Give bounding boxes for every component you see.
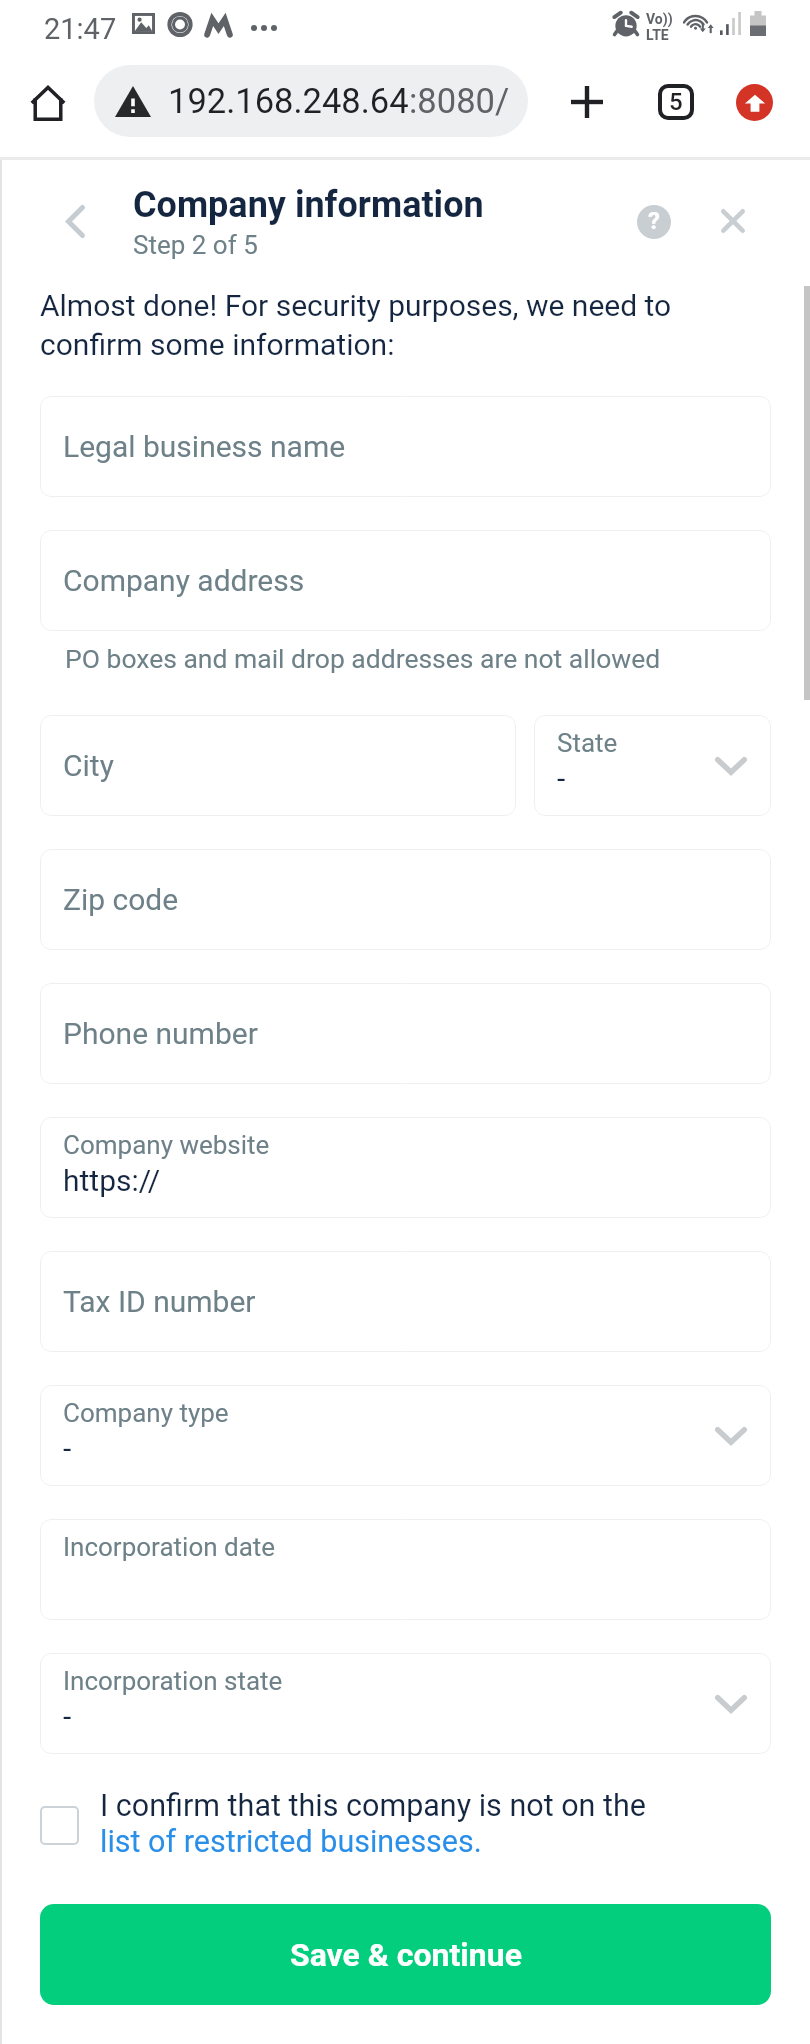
button[interactable]: Tax ID number [40,1251,771,1352]
button[interactable]: Incorporation date [40,1519,771,1620]
staticText: Legal business name [63,429,346,464]
button[interactable]: Company type [40,1385,771,1486]
staticText: PO boxes and mail drop addresses are not… [65,643,661,674]
button[interactable]: Update available [722,70,786,134]
staticText: Company type [63,1398,229,1428]
button[interactable]: Close [706,194,760,248]
button[interactable]: Legal business name [40,396,771,497]
staticText: Company website [63,1130,270,1160]
button[interactable]: New tab [555,70,619,134]
staticText: City [63,748,114,783]
staticText: - [63,1699,72,1734]
staticText: I confirm that this company is not on th… [100,1788,646,1824]
button[interactable]: Tabs [644,70,708,134]
button[interactable]: State [534,715,771,816]
staticText: 21:47 [44,12,117,46]
staticText: Company information [133,184,484,226]
staticText: Almost done! For security purposes, we n… [40,288,700,362]
staticText: Tax ID number [63,1284,256,1319]
staticText: Save & continue [290,1936,522,1974]
button[interactable]: 192.168.248.64 [94,65,528,137]
button[interactable]: list of restricted businesses. [100,1824,482,1860]
staticText: Company address [63,563,305,598]
staticText: Incorporation date [63,1532,276,1562]
button[interactable]: Home [16,71,80,135]
button[interactable]: Help [627,195,681,249]
staticText: - [557,761,566,796]
button[interactable]: Confirm checkbox [40,1806,79,1845]
button[interactable]: Zip code [40,849,771,950]
staticText: Incorporation state [63,1666,283,1696]
staticText: 192.168.248.64 [168,81,409,121]
staticText: - [63,1431,72,1466]
button[interactable]: Save & continue [40,1904,771,2005]
staticText: Zip code [63,882,179,917]
button[interactable]: Back [40,190,110,252]
staticText: https:// [63,1163,161,1198]
staticText: ? [648,207,660,235]
staticText: 5 [669,88,683,116]
button[interactable]: Incorporation state [40,1653,771,1754]
button[interactable]: Company website [40,1117,771,1218]
button[interactable]: Phone number [40,983,771,1084]
staticText: LTE [646,27,669,43]
staticText: Vo)) [646,11,673,27]
staticText: :8080/ [409,81,510,121]
staticText: Step 2 of 5 [133,230,258,260]
staticText: Phone number [63,1016,258,1051]
staticText: State [557,728,618,758]
button[interactable]: Company address [40,530,771,631]
button[interactable]: City [40,715,516,816]
